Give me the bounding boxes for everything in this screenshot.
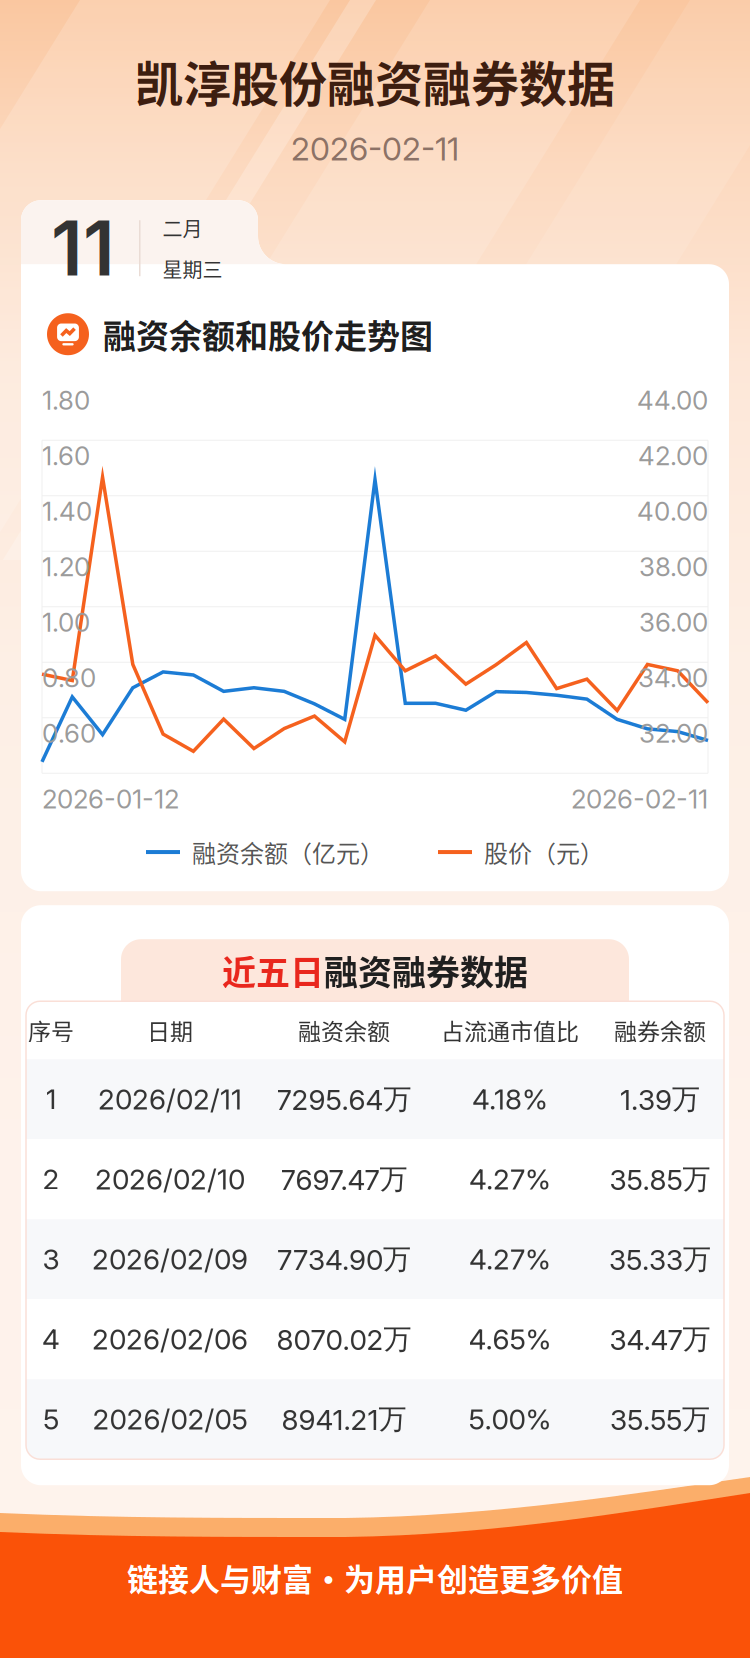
staticText: 35.33万	[609, 1242, 711, 1277]
staticText: 2026-02-11	[291, 129, 459, 168]
staticText: 35.55万	[610, 1402, 710, 1437]
staticText: 4.65%	[468, 1322, 551, 1356]
staticText: 占流通市值比	[441, 1014, 579, 1047]
staticText: 2026/02/05	[92, 1402, 247, 1436]
staticText: 日期	[147, 1014, 193, 1047]
staticText: 1.80	[42, 384, 90, 416]
staticText: 序号	[28, 1014, 74, 1047]
staticText: 7697.47万	[280, 1162, 407, 1197]
staticText: 44.00	[637, 384, 708, 416]
staticText: 融资余额（亿元）	[192, 835, 384, 869]
staticText: 5.00%	[468, 1402, 551, 1436]
staticText: 1.40	[42, 495, 92, 527]
staticText: 2026/02/11	[98, 1082, 242, 1116]
staticText: 5	[43, 1402, 59, 1436]
staticText: 2026/02/09	[92, 1242, 248, 1276]
staticText: 凯淳股份融资融券数据	[135, 46, 615, 115]
staticText: 1.20	[42, 551, 90, 582]
staticText: 融资余额和股价走势图	[103, 310, 433, 358]
staticText: 35.85万	[609, 1162, 710, 1197]
staticText: 链接人与财富·为用户创造更多价值	[127, 1555, 623, 1600]
staticText: 近五日	[222, 946, 324, 995]
staticText: 0.60	[42, 717, 96, 749]
staticText: 8070.02万	[276, 1322, 411, 1357]
staticText: 34.00	[638, 662, 708, 693]
staticText: 2026/02/06	[92, 1322, 248, 1356]
staticText: 星期三	[162, 254, 222, 283]
staticText: 3	[42, 1242, 59, 1276]
staticText: 34.47万	[609, 1322, 710, 1357]
staticText: 4.27%	[469, 1242, 551, 1276]
staticText: 1.39万	[620, 1082, 700, 1117]
staticText: 11	[51, 203, 115, 293]
staticText: 8941.21万	[281, 1402, 406, 1437]
staticText: 2	[42, 1162, 59, 1196]
staticText: 36.00	[639, 606, 708, 638]
staticText: 2026-02-11	[571, 783, 708, 815]
staticText: 4.27%	[469, 1162, 551, 1196]
staticText: 股价（元）	[484, 835, 604, 869]
staticText: 1	[45, 1082, 56, 1116]
staticText: 42.00	[638, 440, 708, 471]
staticText: 38.00	[639, 551, 708, 582]
staticText: 4.18%	[472, 1082, 548, 1116]
staticText: 二月	[162, 213, 202, 242]
staticText: 40.00	[637, 495, 708, 527]
staticText: 融资余额	[298, 1014, 390, 1047]
staticText: 融资融券数据	[324, 946, 528, 995]
staticText: 32.00	[639, 717, 708, 749]
staticText: 1.00	[42, 606, 90, 638]
staticText: 2026-01-12	[42, 783, 179, 815]
staticText: 4	[42, 1322, 60, 1356]
staticText: 融券余额	[614, 1014, 706, 1047]
staticText: 7734.90万	[277, 1242, 411, 1277]
staticText: 7295.64万	[276, 1082, 411, 1117]
staticText: 2026/02/10	[95, 1162, 245, 1196]
staticText: 0.80	[42, 662, 96, 693]
staticText: 1.60	[42, 440, 90, 471]
